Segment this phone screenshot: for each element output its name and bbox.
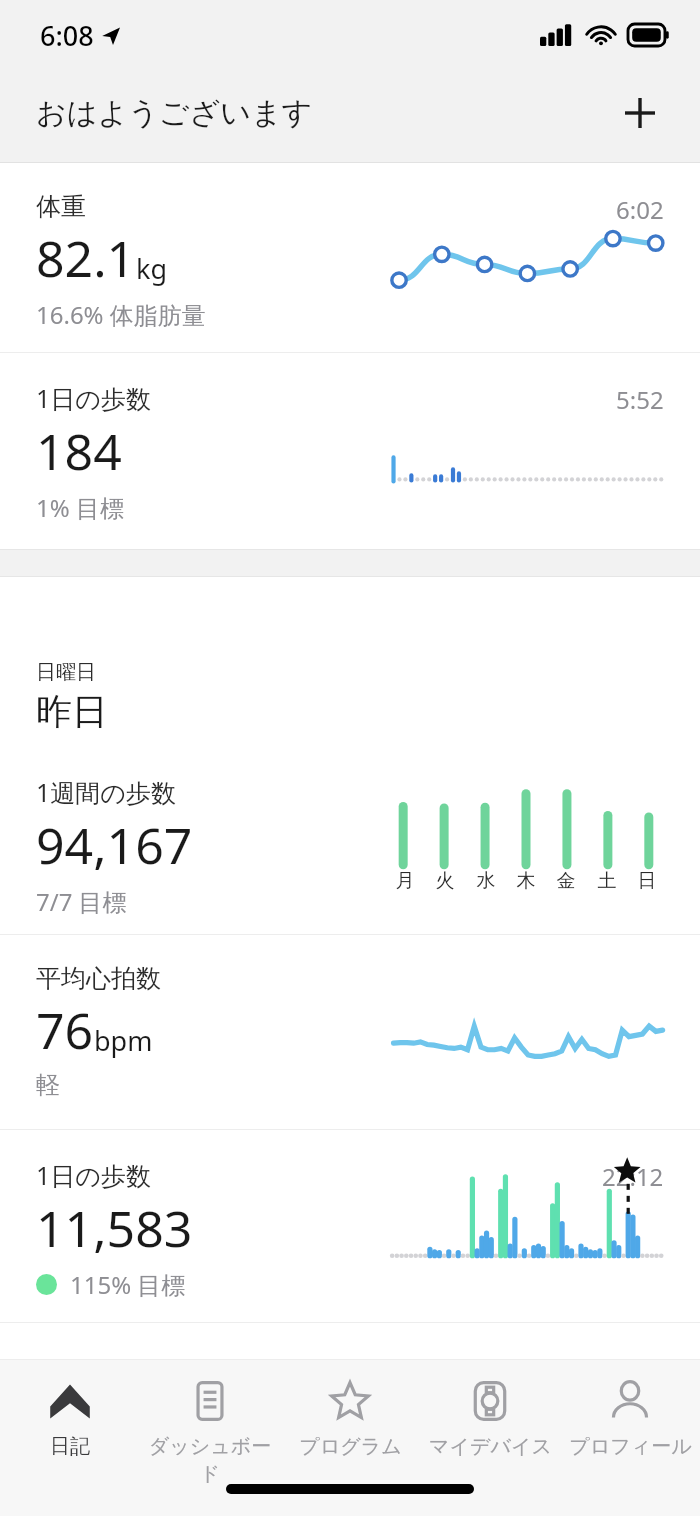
staticText: プロフィール (569, 1434, 692, 1459)
staticText: マイデバイス (429, 1434, 552, 1459)
staticText: 6:02 (616, 193, 664, 226)
staticText: 6:08 (40, 17, 94, 54)
staticText: 金 (551, 869, 581, 893)
staticText: 11,583 (36, 1194, 193, 1262)
staticText: ダッシュボード (140, 1434, 280, 1486)
staticText: 22:12 (602, 1160, 664, 1193)
staticText: 82.1 (36, 224, 136, 292)
staticText: kg (136, 250, 168, 287)
staticText: 1日の歩数 (36, 381, 151, 415)
button[interactable]: マイデバイス (420, 1360, 560, 1515)
staticText: 7/7 目標 (36, 885, 127, 918)
staticText: 1日の歩数 (36, 1158, 151, 1192)
staticText: プログラム (299, 1434, 402, 1459)
staticText: 日記 (50, 1434, 90, 1459)
button[interactable]: 日記 (0, 1360, 140, 1515)
button[interactable]: プログラム (280, 1360, 420, 1515)
staticText: 5:52 (616, 383, 664, 416)
staticText: 16.6% 体脂肪量 (36, 298, 206, 331)
staticText: おはようございます (36, 94, 313, 132)
staticText: 1週間の歩数 (36, 775, 176, 809)
staticText: 木 (511, 869, 541, 893)
staticText: 水 (471, 869, 501, 893)
staticText: 1% 目標 (36, 491, 124, 524)
staticText: 184 (36, 417, 122, 485)
staticText: 日曜日 (36, 660, 96, 685)
staticText: 体重 (36, 191, 86, 222)
button[interactable]: プロフィール (560, 1360, 700, 1515)
button[interactable]: 体重 (0, 163, 700, 352)
staticText: 115% 目標 (70, 1268, 186, 1301)
staticText: 月 (390, 869, 420, 893)
staticText: 火 (430, 869, 460, 893)
button[interactable]: 1週間の歩数 (0, 747, 700, 934)
button[interactable]: ダッシュボード (140, 1360, 280, 1515)
button[interactable]: 1日の歩数 (0, 1130, 700, 1322)
staticText: 軽 (36, 1070, 60, 1100)
button[interactable]: 平均心拍数 (0, 935, 700, 1129)
staticText: 平均心拍数 (36, 963, 161, 994)
staticText: bpm (94, 1022, 153, 1059)
staticText: 昨日 (36, 689, 108, 734)
staticText: 土 (592, 869, 622, 893)
staticText: 94,167 (36, 811, 193, 879)
staticText: 日 (632, 869, 662, 893)
button[interactable]: 1日の歩数 (0, 353, 700, 549)
staticText: 76 (36, 996, 94, 1064)
button[interactable]: Add (612, 85, 668, 141)
